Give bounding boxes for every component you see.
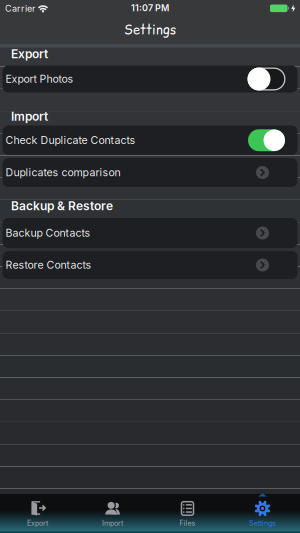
staticText: Export Photos bbox=[5, 73, 73, 85]
button[interactable]: Files bbox=[150, 497, 225, 531]
staticText: Settings bbox=[124, 21, 176, 39]
staticText: Import bbox=[102, 519, 123, 528]
staticText: Export bbox=[27, 519, 48, 528]
button[interactable]: Export Photos bbox=[2, 65, 297, 92]
staticText: Backup Contacts bbox=[5, 227, 90, 239]
button[interactable]: Check Duplicate Contacts bbox=[2, 125, 297, 155]
button[interactable]: Import bbox=[75, 497, 150, 531]
staticText: Duplicates comparison bbox=[5, 166, 120, 179]
staticText: Files bbox=[179, 519, 195, 528]
staticText: Restore Contacts bbox=[5, 259, 91, 271]
button[interactable]: Settings bbox=[225, 497, 300, 531]
button[interactable]: Export bbox=[0, 497, 75, 531]
staticText: Settings bbox=[249, 519, 276, 528]
button[interactable]: Duplicates comparison bbox=[2, 158, 297, 187]
staticText: Export bbox=[11, 46, 48, 61]
button[interactable]: Restore Contacts bbox=[2, 251, 297, 279]
staticText: Import bbox=[11, 109, 48, 123]
staticText: Carrier bbox=[5, 3, 35, 14]
button[interactable]: Backup Contacts bbox=[2, 218, 297, 248]
staticText: 11:07 PM bbox=[131, 3, 169, 13]
staticText: Backup & Restore bbox=[11, 198, 113, 213]
staticText: Check Duplicate Contacts bbox=[5, 134, 135, 147]
